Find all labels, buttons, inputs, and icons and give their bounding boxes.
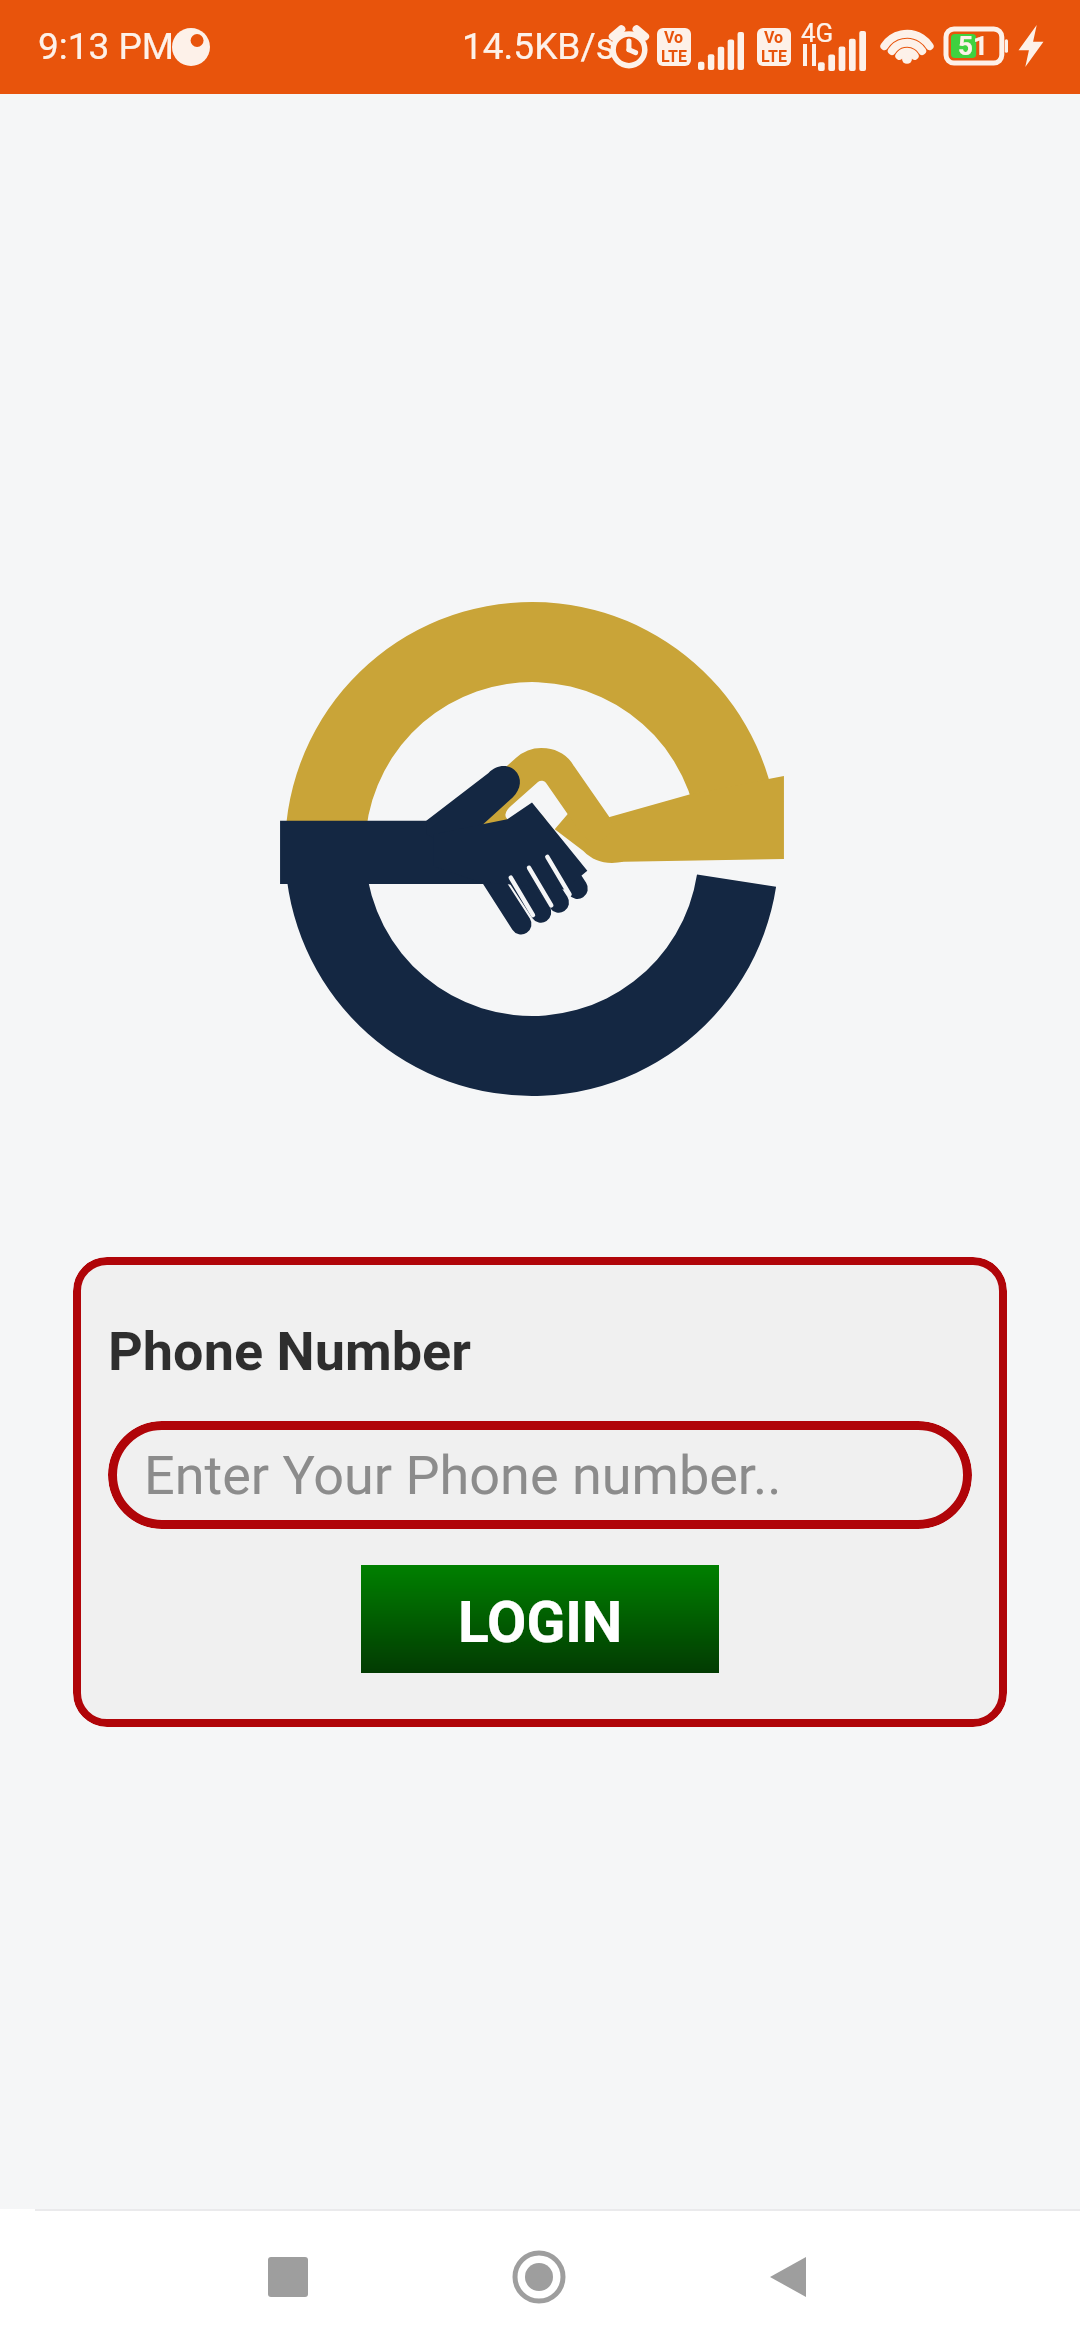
staticText: Phone Number	[108, 1320, 471, 1383]
staticText: LTE	[761, 47, 787, 66]
staticText: Vo	[764, 28, 784, 47]
button[interactable]: LOGIN	[361, 1565, 719, 1673]
button[interactable]: Back	[732, 2222, 842, 2332]
staticText: Enter Your Phone number..	[144, 1444, 782, 1507]
staticText: Vo	[664, 28, 684, 47]
staticText: 9:13 PM	[38, 25, 175, 68]
button[interactable]: Recents	[233, 2222, 343, 2332]
staticText: LOGIN	[458, 1589, 623, 1656]
staticText: 14.5KB/s	[462, 25, 615, 68]
button[interactable]: Enter Your Phone number..	[108, 1421, 972, 1529]
staticText: 51	[958, 31, 988, 61]
staticText: LTE	[661, 47, 687, 66]
button[interactable]: Home	[484, 2222, 594, 2332]
staticText: 4G	[801, 18, 834, 48]
